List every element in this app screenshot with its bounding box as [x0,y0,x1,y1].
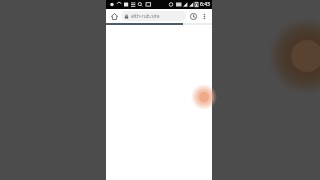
button[interactable]: elth-rub.site [121,11,186,21]
button[interactable]: More options [199,11,210,22]
button[interactable]: Home [109,11,120,22]
staticText: elth-rub.site [131,13,160,20]
button[interactable]: Reload [188,11,199,22]
staticText: 6:43 [200,1,210,8]
